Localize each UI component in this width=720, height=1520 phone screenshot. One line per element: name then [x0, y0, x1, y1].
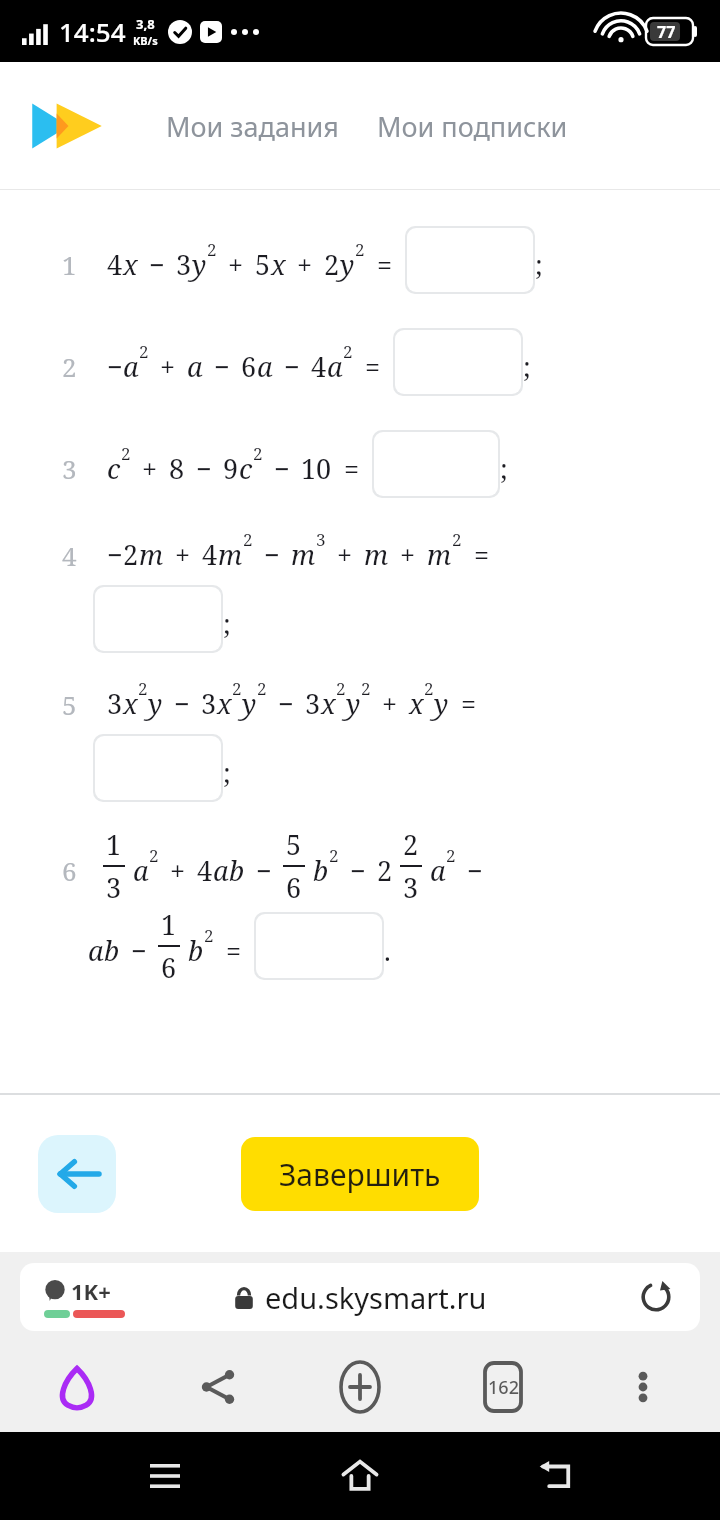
- staticText: =: [344, 450, 360, 487]
- staticText: a: [187, 348, 203, 385]
- staticText: ;: [500, 450, 508, 487]
- staticText: 2: [232, 677, 242, 700]
- staticText: Мои задания: [166, 108, 339, 145]
- staticText: m: [291, 536, 316, 573]
- staticText: x: [321, 685, 336, 722]
- staticText: 1: [161, 906, 177, 943]
- staticText: =: [365, 348, 381, 385]
- button[interactable]: Поделиться: [191, 1360, 245, 1414]
- staticText: m: [139, 536, 164, 573]
- staticText: y: [148, 685, 163, 722]
- staticText: 2: [62, 349, 77, 384]
- button[interactable]: Завершить: [241, 1137, 479, 1211]
- staticText: 2: [204, 924, 214, 947]
- staticText: 5: [62, 687, 77, 722]
- button[interactable]: Назад: [525, 1445, 587, 1507]
- button[interactable]: Главная: [329, 1445, 391, 1507]
- staticText: +: [160, 348, 176, 385]
- staticText: −: [214, 348, 230, 385]
- staticText: 3: [106, 869, 122, 906]
- staticText: 3: [107, 685, 123, 722]
- staticText: 2: [336, 677, 346, 700]
- staticText: b: [313, 852, 329, 889]
- staticText: a: [213, 852, 229, 889]
- staticText: +: [297, 246, 313, 283]
- staticText: ;: [535, 246, 543, 283]
- button[interactable]: 1K+: [20, 1263, 700, 1331]
- staticText: x: [217, 685, 232, 722]
- staticText: 2: [361, 677, 371, 700]
- staticText: b: [188, 932, 204, 969]
- staticText: 6: [286, 869, 302, 906]
- staticText: 3: [403, 869, 419, 906]
- button[interactable]: Мои задания: [162, 98, 343, 155]
- staticText: 1K+: [71, 1276, 111, 1306]
- staticText: 1: [106, 826, 122, 863]
- staticText: m: [218, 536, 243, 573]
- staticText: 2: [446, 844, 456, 867]
- button[interactable]: Назад: [38, 1135, 116, 1213]
- staticText: 9: [223, 450, 239, 487]
- staticText: 2: [121, 442, 131, 465]
- staticText: x: [409, 685, 424, 722]
- staticText: +: [400, 536, 416, 573]
- staticText: −: [284, 348, 300, 385]
- staticText: 10: [301, 450, 332, 487]
- staticText: b: [104, 932, 120, 969]
- staticText: =: [377, 246, 393, 283]
- staticText: ;: [223, 605, 231, 642]
- staticText: 2: [253, 442, 263, 465]
- staticText: 2: [324, 246, 340, 283]
- button[interactable]: Вкладки: [476, 1360, 530, 1414]
- staticText: y: [434, 685, 449, 722]
- staticText: 2: [329, 844, 339, 867]
- staticText: 3: [176, 246, 192, 283]
- staticText: 6: [241, 348, 257, 385]
- staticText: 4: [202, 536, 218, 573]
- staticText: 6: [62, 853, 77, 888]
- staticText: +: [142, 450, 158, 487]
- staticText: ;: [523, 348, 531, 385]
- staticText: a: [123, 348, 139, 385]
- staticText: 2: [123, 536, 139, 573]
- staticText: 2: [149, 844, 159, 867]
- staticText: −: [264, 536, 280, 573]
- staticText: −: [278, 685, 294, 722]
- staticText: 2: [343, 340, 353, 363]
- staticText: x: [123, 246, 138, 283]
- staticText: a: [327, 348, 343, 385]
- staticText: y: [340, 246, 355, 283]
- staticText: m: [364, 536, 389, 573]
- button[interactable]: Новая вкладка: [331, 1358, 389, 1416]
- staticText: 3: [316, 528, 326, 551]
- staticText: ;: [223, 754, 231, 791]
- staticText: −: [131, 932, 147, 969]
- staticText: 2: [452, 528, 462, 551]
- staticText: 2: [243, 528, 253, 551]
- staticText: 4: [311, 348, 327, 385]
- staticText: −: [196, 450, 212, 487]
- button[interactable]: Обновить: [636, 1277, 676, 1317]
- staticText: 77: [657, 21, 676, 43]
- staticText: −: [274, 450, 290, 487]
- staticText: −: [107, 348, 123, 385]
- staticText: 2: [257, 677, 267, 700]
- staticText: 2: [139, 340, 149, 363]
- staticText: 6: [161, 949, 177, 986]
- staticText: a: [257, 348, 273, 385]
- staticText: +: [228, 246, 244, 283]
- button[interactable]: Недавние: [134, 1445, 196, 1507]
- button[interactable]: Меню: [616, 1360, 670, 1414]
- button[interactable]: Мои подписки: [373, 98, 572, 155]
- button[interactable]: Домой: [50, 1360, 104, 1414]
- staticText: c: [239, 450, 253, 487]
- staticText: 2: [403, 826, 419, 863]
- staticText: +: [170, 852, 186, 889]
- button[interactable]: Skysmart: [30, 98, 104, 154]
